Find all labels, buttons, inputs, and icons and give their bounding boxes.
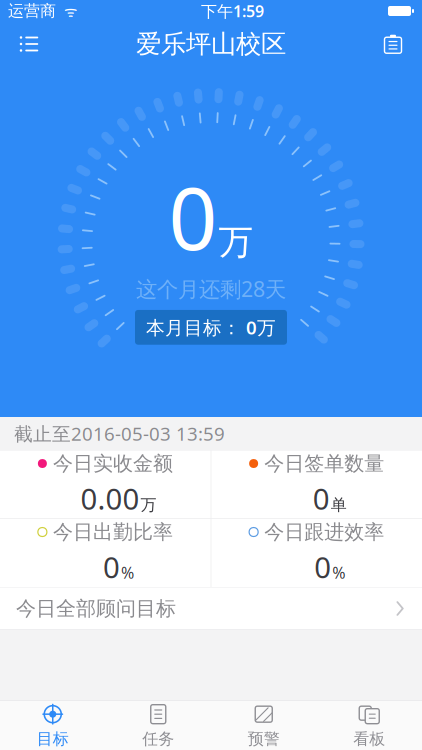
- staticText: 0.00: [80, 479, 139, 518]
- button[interactable]: 目标: [0, 701, 105, 750]
- staticText: 爱乐坪山校区: [136, 28, 286, 59]
- staticText: 今日签单数量: [264, 451, 384, 476]
- staticText: 今日全部顾问目标: [16, 596, 176, 621]
- staticText: 下午1:59: [201, 0, 264, 22]
- staticText: 0: [168, 160, 217, 274]
- staticText: 任务: [142, 729, 174, 749]
- button[interactable]: 日历: [364, 22, 422, 66]
- button[interactable]: 今日全部顾问目标: [0, 587, 422, 629]
- staticText: 本月目标： 0万: [146, 315, 276, 340]
- button[interactable]: 看板: [316, 701, 422, 750]
- staticText: %: [332, 562, 345, 583]
- staticText: ᯤ: [56, 1, 77, 21]
- staticText: 0: [103, 547, 120, 586]
- staticText: 0: [313, 479, 330, 518]
- button[interactable]: 任务: [105, 701, 211, 750]
- staticText: 运营商: [8, 1, 56, 21]
- staticText: %: [121, 562, 134, 583]
- staticText: 今日实收金额: [53, 451, 173, 476]
- staticText: 万: [140, 495, 156, 515]
- staticText: 万: [218, 221, 253, 264]
- staticText: 预警: [248, 729, 280, 749]
- button[interactable]: 预警: [211, 701, 316, 750]
- button[interactable]: 菜单: [0, 22, 58, 66]
- staticText: 这个月还剩28天: [136, 275, 286, 303]
- staticText: 今日跟进效率: [264, 520, 384, 544]
- staticText: 单: [331, 495, 347, 515]
- staticText: 截止至2016-05-03 13:59: [14, 421, 225, 446]
- staticText: 目标: [37, 729, 69, 749]
- staticText: 看板: [353, 729, 385, 749]
- staticText: 0: [314, 547, 331, 586]
- staticText: 今日出勤比率: [53, 520, 173, 544]
